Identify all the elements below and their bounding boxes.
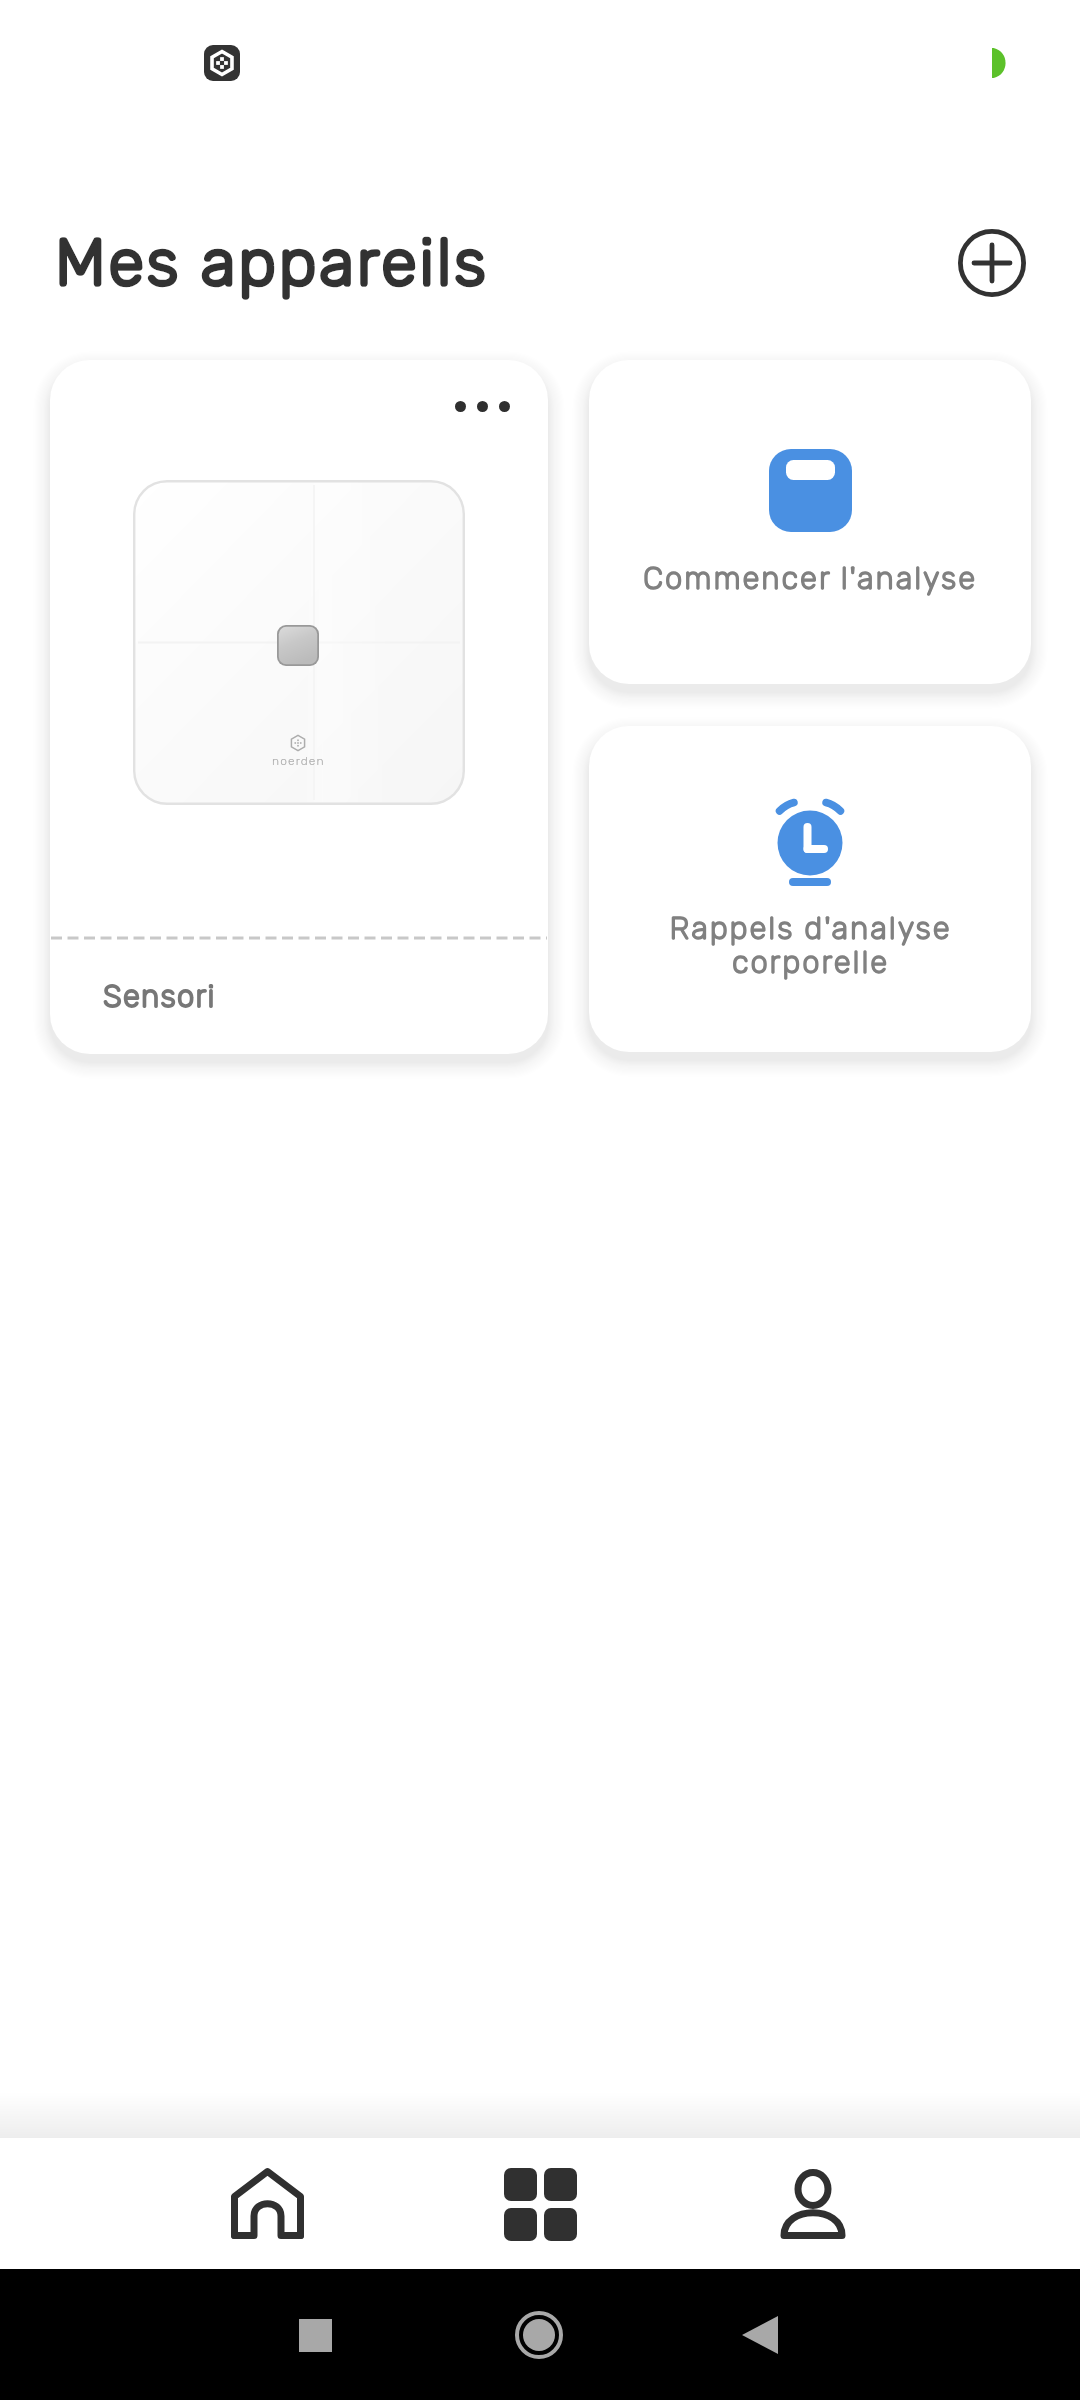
staticText: Commencer l'analyse	[643, 560, 977, 597]
button[interactable]: Home button	[494, 2290, 584, 2380]
staticText: Sensori	[103, 978, 216, 1015]
button[interactable]: Add device	[946, 217, 1038, 309]
button[interactable]: More options	[445, 391, 520, 422]
staticText: Mes appareils	[55, 224, 489, 301]
button[interactable]: Profile	[723, 2138, 903, 2269]
button[interactable]: Back	[715, 2290, 805, 2380]
button[interactable]: More options	[50, 360, 548, 1054]
staticText: Commencer l'analyse	[643, 560, 977, 597]
staticText: Rappels d'analyse corporelle	[669, 910, 952, 981]
staticText: Rappels d'analyse corporelle	[669, 910, 952, 981]
button[interactable]: Home	[177, 2138, 357, 2269]
button[interactable]: Commencer l'analyse	[589, 360, 1031, 684]
button[interactable]: Rappels d'analyse corporelle	[589, 726, 1031, 1052]
button[interactable]: Devices	[450, 2138, 630, 2269]
staticText: noerden	[272, 754, 325, 768]
staticText: Sensori	[103, 978, 216, 1015]
button[interactable]: Recents	[270, 2290, 360, 2380]
staticText: Mes appareils	[55, 224, 489, 301]
